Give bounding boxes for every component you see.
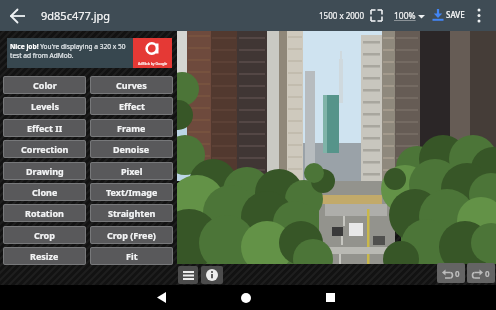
button[interactable] (237, 289, 255, 306)
staticText: Rotation (25, 207, 64, 219)
staticText: Crop (34, 229, 55, 241)
staticText: 0 (485, 268, 490, 279)
button[interactable]: Curves (90, 76, 173, 94)
staticText: Crop (Free) (107, 229, 156, 241)
button[interactable]: Correction (3, 140, 86, 158)
staticText: Clone (32, 186, 58, 198)
staticText: AdMob by Google (138, 61, 168, 66)
button[interactable] (152, 289, 170, 306)
button[interactable]: Resize (3, 247, 86, 265)
button[interactable]: Frame (90, 119, 173, 137)
button[interactable] (6, 4, 30, 28)
staticText: SAVE (446, 9, 465, 20)
button[interactable]: Crop (Free) (90, 226, 173, 244)
button[interactable]: Denoise (90, 140, 173, 158)
button[interactable]: SAVE (432, 8, 465, 21)
button[interactable]: Clone (3, 183, 86, 201)
staticText: Color (33, 79, 57, 91)
button[interactable]: Crop (3, 226, 86, 244)
staticText: Drawing (26, 165, 64, 177)
button[interactable]: Effect (90, 97, 173, 115)
staticText: 0 (455, 268, 460, 279)
staticText: 9d85c477.jpg (41, 8, 111, 23)
staticText: Nice job! You're displaying a 320 x 50 t… (10, 42, 133, 60)
staticText: Effect (119, 100, 145, 112)
button[interactable]: Straighten (90, 204, 173, 222)
button[interactable]: Nice job! You're displaying a 320 x 50 t… (7, 38, 172, 68)
button[interactable]: Text/Image (90, 183, 173, 201)
button[interactable]: 0 (467, 263, 495, 283)
staticText: Pixel (121, 165, 143, 177)
staticText: Straighten (108, 207, 156, 219)
staticText: 100% (394, 10, 416, 22)
button[interactable]: Drawing (3, 162, 86, 180)
button[interactable]: Color (3, 76, 86, 94)
staticText: Effect II (27, 122, 63, 134)
staticText: Denoise (113, 143, 150, 155)
staticText: Levels (31, 100, 59, 112)
button[interactable] (178, 266, 198, 284)
staticText: Text/Image (106, 186, 158, 198)
staticText: Curves (116, 79, 147, 91)
button[interactable] (476, 8, 482, 23)
button[interactable] (201, 266, 223, 284)
button[interactable]: 0 (437, 263, 465, 283)
button[interactable]: Fit (90, 247, 173, 265)
button[interactable] (321, 289, 339, 306)
button[interactable]: Pixel (90, 162, 173, 180)
button[interactable]: Effect II (3, 119, 86, 137)
button[interactable]: 100% (394, 10, 425, 22)
staticText: Resize (30, 250, 59, 262)
staticText: Fit (126, 250, 138, 262)
staticText: Frame (117, 122, 146, 134)
staticText: Correction (21, 143, 69, 155)
button[interactable]: Rotation (3, 204, 86, 222)
staticText: 1500 x 2000 (319, 10, 364, 21)
button[interactable] (371, 10, 382, 21)
button[interactable]: Levels (3, 97, 86, 115)
